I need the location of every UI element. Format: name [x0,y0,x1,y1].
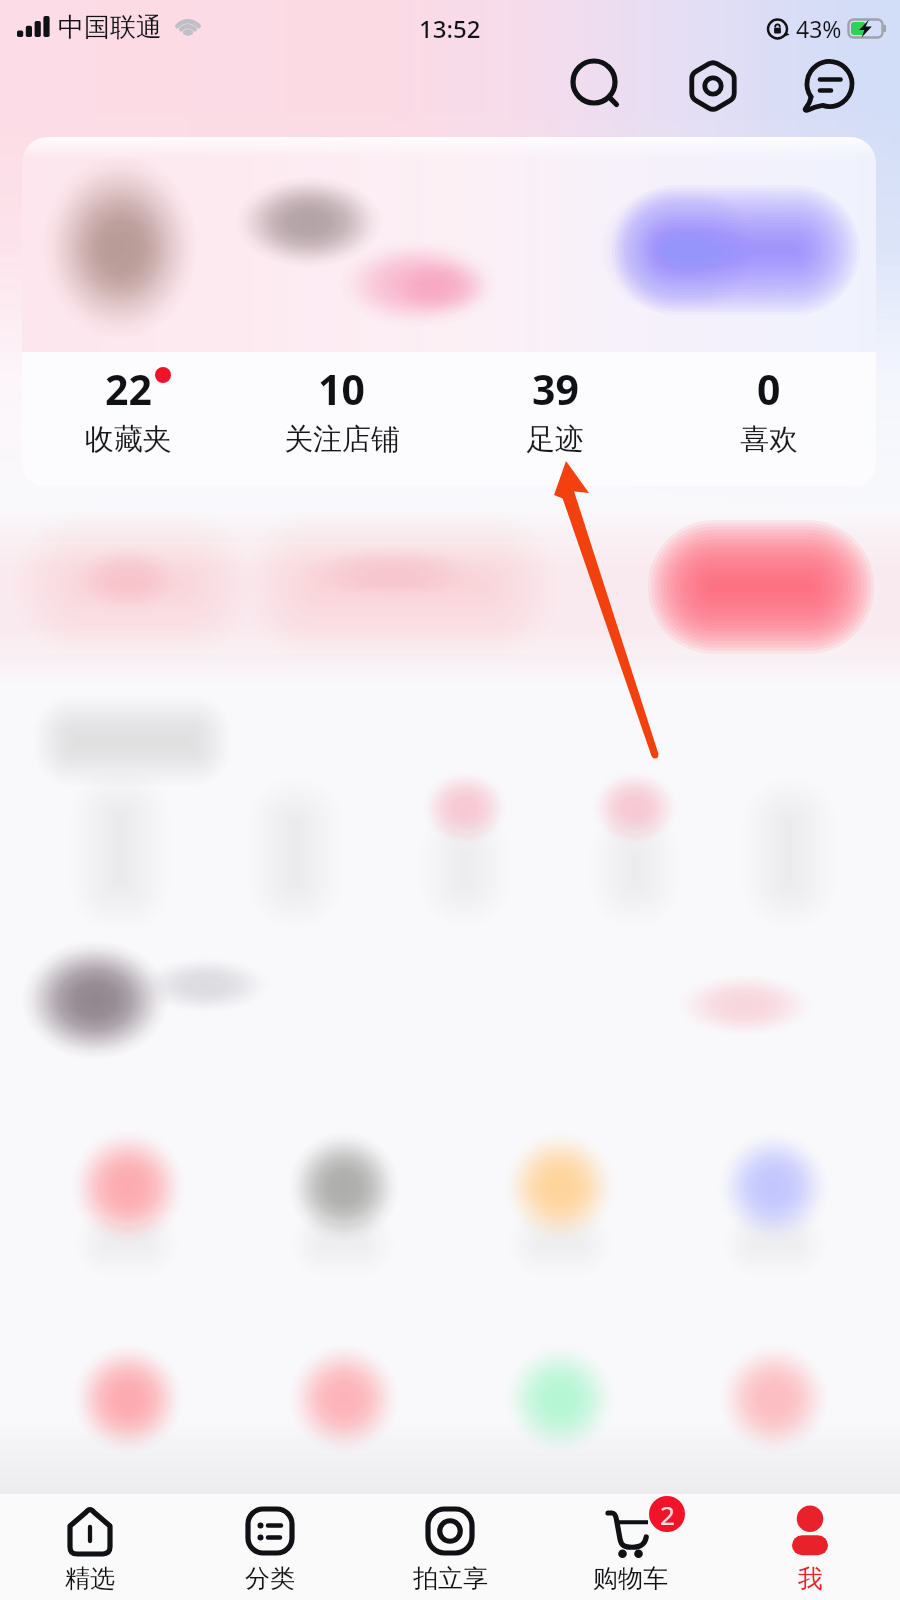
button[interactable]: Settings [681,54,745,118]
button[interactable]: 2 [540,1494,720,1600]
button[interactable]: Search [564,54,628,118]
button[interactable]: 我 [720,1494,900,1600]
staticText: 喜欢 [740,421,798,458]
staticText: 22 [105,361,152,417]
staticText: 收藏夹 [85,421,172,458]
button[interactable]: 39 [448,352,662,486]
staticText: 足迹 [526,421,584,458]
button[interactable]: 精选 [0,1494,180,1600]
button[interactable]: 22 [22,352,235,486]
staticText: 39 [532,361,579,417]
staticText: 2 [660,1497,675,1532]
button[interactable]: 0 [662,352,876,486]
staticText: 10 [318,361,365,417]
staticText: 中国联通 [58,11,162,44]
button[interactable]: 10 [235,352,448,486]
button[interactable]: 拍立享 [360,1494,540,1600]
staticText: 分类 [245,1563,295,1594]
staticText: 0 [757,361,781,417]
staticText: 我 [798,1563,823,1594]
staticText: 关注店铺 [284,421,400,458]
staticText: 精选 [65,1563,115,1594]
button[interactable]: 分类 [180,1494,360,1600]
staticText: 购物车 [593,1563,668,1594]
staticText: 拍立享 [413,1563,488,1594]
staticText: 43% [796,13,842,44]
staticText: 13:52 [419,12,481,45]
button[interactable]: Messages [796,54,860,118]
